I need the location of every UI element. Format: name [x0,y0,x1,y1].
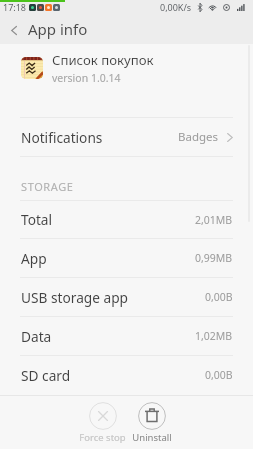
staticText: 0,00B [205,290,233,304]
button[interactable]: Total [0,201,253,238]
staticText: STORAGE [21,179,74,194]
staticText: Uninstall [132,431,172,444]
staticText: Data [21,327,52,346]
button[interactable]: USB storage app [0,278,253,316]
staticText: App [21,249,47,268]
staticText: Total [21,210,53,229]
staticText: version 1.0.14 [52,71,121,85]
staticText: Notifications [21,128,103,147]
staticText: Badges [178,129,219,145]
staticText: Список покупок [52,51,154,69]
button[interactable]: App [0,239,253,277]
button[interactable]: Data [0,317,253,355]
staticText: Force stop [79,431,126,444]
button[interactable]: Список покупок [0,44,253,117]
staticText: 0,00K/s [160,1,192,13]
button[interactable]: Uninstall [127,396,176,449]
staticText: 0,00B [205,368,233,382]
staticText: 1,02MB [195,329,233,343]
button[interactable]: SD card [0,356,253,394]
button[interactable]: Back [0,14,28,44]
button[interactable]: Notifications [0,118,253,156]
button[interactable]: Force stop [78,396,127,449]
staticText: 17:18 [3,1,27,13]
staticText: App info [28,19,88,39]
staticText: 0,99MB [195,251,233,265]
staticText: 2,01MB [195,213,233,227]
staticText: SD card [21,366,71,385]
staticText: USB storage app [21,288,129,307]
